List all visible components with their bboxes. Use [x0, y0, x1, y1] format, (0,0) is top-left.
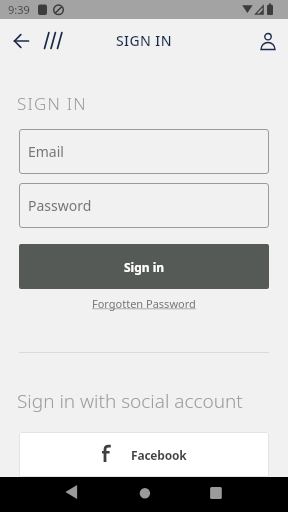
staticText: Email — [28, 142, 64, 161]
button[interactable]: Forgotten Password — [88, 292, 200, 315]
button[interactable] — [192, 477, 288, 512]
button[interactable] — [6, 25, 38, 57]
button[interactable]: Password — [19, 183, 269, 228]
staticText: Password — [28, 196, 92, 215]
staticText: Sign in with social account — [17, 388, 243, 414]
button[interactable]: Facebook — [19, 432, 269, 477]
button[interactable] — [253, 26, 283, 56]
button[interactable] — [96, 477, 192, 512]
button[interactable]: Email — [19, 129, 269, 174]
button[interactable] — [0, 477, 96, 512]
staticText: SIGN IN — [116, 31, 172, 50]
button[interactable]: Sign in — [19, 244, 269, 289]
staticText: SIGN IN — [17, 92, 87, 115]
staticText: Facebook — [131, 447, 187, 463]
staticText: Sign in — [124, 259, 165, 275]
staticText: 9:39 — [8, 2, 30, 17]
staticText: Forgotten Password — [92, 296, 196, 311]
